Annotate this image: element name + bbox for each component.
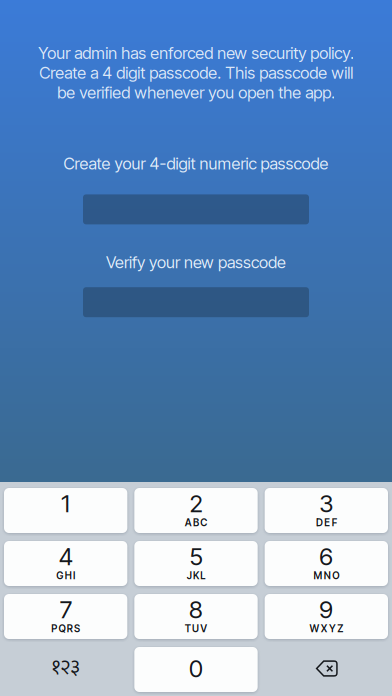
staticText: WXYZ (309, 622, 343, 635)
button[interactable]: 4 (4, 541, 127, 586)
staticText: 9 (319, 595, 333, 624)
staticText: 0 (189, 654, 203, 683)
button[interactable]: 6 (265, 541, 388, 586)
staticText: १२३ (51, 651, 80, 684)
button[interactable]: 9 (265, 594, 388, 639)
staticText: PQRS (51, 622, 80, 635)
staticText: TUV (185, 622, 207, 635)
button[interactable]: 2 (134, 488, 258, 533)
button[interactable]: 3 (265, 488, 388, 533)
staticText: ABC (185, 516, 207, 529)
button[interactable]: 1 (4, 488, 127, 533)
staticText: 1 (61, 489, 70, 518)
button[interactable]: 0 (134, 647, 258, 692)
staticText: MNO (313, 569, 339, 582)
staticText: DEF (316, 516, 337, 529)
staticText: Verify your new passcode (106, 252, 286, 272)
button[interactable]: 8 (134, 594, 258, 639)
button[interactable]: Delete (265, 647, 388, 692)
staticText: 8 (189, 595, 203, 624)
staticText: 3 (319, 489, 333, 518)
staticText: Create your 4-digit numeric passcode (63, 153, 328, 173)
staticText: JKL (187, 569, 205, 582)
button[interactable]: 7 (4, 594, 127, 639)
staticText: 5 (189, 542, 202, 571)
staticText: GHI (56, 569, 75, 582)
staticText: 2 (189, 489, 202, 518)
staticText: 6 (319, 542, 333, 571)
staticText: Your admin has enforced new security pol… (38, 43, 354, 102)
staticText: 7 (60, 595, 72, 624)
staticText: 4 (59, 542, 73, 571)
button[interactable]: 5 (134, 541, 258, 586)
button[interactable]: Switch keyboard (4, 647, 127, 692)
